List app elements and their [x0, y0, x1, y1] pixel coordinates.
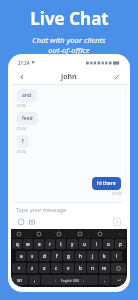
- button[interactable]: Keyboard tool: [35, 230, 42, 237]
- button[interactable]: Keyboard tool: [15, 230, 22, 237]
- staticText: e: [38, 241, 41, 247]
- button[interactable]: Keyboard tool: [55, 230, 62, 237]
- staticText: ,: [34, 277, 36, 283]
- button[interactable]: Attach photo: [27, 217, 36, 226]
- button[interactable]: r: [45, 239, 55, 249]
- button[interactable]: n: [87, 263, 98, 273]
- staticText: 21:24: [112, 191, 121, 196]
- button[interactable]: Emoji: [16, 217, 25, 226]
- button[interactable]: s: [27, 251, 38, 261]
- button[interactable]: e: [34, 239, 44, 249]
- staticText: y: [71, 241, 74, 247]
- staticText: s: [31, 253, 34, 259]
- button[interactable]: ,: [29, 275, 40, 285]
- staticText: and: [22, 92, 32, 99]
- button[interactable]: g: [63, 251, 74, 261]
- staticText: i: [96, 241, 98, 247]
- staticText: q: [16, 241, 19, 247]
- staticText: l: [116, 253, 118, 259]
- staticText: f: [56, 253, 58, 259]
- staticText: !#1: [17, 278, 23, 283]
- button[interactable]: !#1: [12, 275, 28, 285]
- button[interactable]: and: [17, 89, 37, 102]
- staticText: g: [67, 253, 70, 259]
- button[interactable]: l: [111, 251, 122, 261]
- staticText: j: [92, 253, 94, 259]
- staticText: h: [79, 253, 82, 259]
- button[interactable]: hi there: [92, 177, 121, 190]
- button[interactable]: Keyboard tool: [96, 230, 103, 237]
- staticText: o: [107, 241, 110, 247]
- button[interactable]: .: [99, 275, 110, 285]
- button[interactable]: x: [39, 263, 50, 273]
- button[interactable]: a: [16, 251, 26, 261]
- button[interactable]: ‹: [41, 275, 98, 285]
- button[interactable]: w: [23, 239, 33, 249]
- button[interactable]: t: [56, 239, 66, 249]
- button[interactable]: b: [75, 263, 86, 273]
- staticText: John: [61, 72, 77, 82]
- staticText: x: [43, 265, 46, 271]
- staticText: 21:24: [17, 149, 26, 154]
- button[interactable]: y: [67, 239, 78, 249]
- button[interactable]: Keyboard tool: [76, 230, 83, 237]
- staticText: k: [103, 253, 106, 259]
- button[interactable]: u: [79, 239, 90, 249]
- button[interactable]: c: [51, 263, 62, 273]
- button[interactable]: o: [103, 239, 114, 249]
- button[interactable]: i: [91, 239, 102, 249]
- button[interactable]: f: [17, 135, 29, 148]
- staticText: .: [104, 277, 106, 283]
- button[interactable]: feed: [17, 112, 38, 125]
- staticText: z: [31, 265, 34, 271]
- button[interactable]: z: [27, 263, 38, 273]
- staticText: b: [79, 265, 82, 271]
- staticText: Chat with your clients out-of-office: [32, 35, 106, 55]
- staticText: hi there: [97, 180, 116, 187]
- staticText: w: [26, 241, 30, 247]
- button[interactable]: More options: [116, 230, 123, 237]
- button[interactable]: f: [51, 251, 62, 261]
- staticText: d: [43, 253, 46, 259]
- button[interactable]: Type your message: [16, 206, 122, 213]
- button[interactable]: k: [99, 251, 110, 261]
- staticText: p: [119, 241, 122, 247]
- button[interactable]: m: [99, 263, 110, 273]
- button[interactable]: Key: [12, 263, 26, 273]
- button[interactable]: Back: [15, 70, 28, 83]
- staticText: t: [60, 241, 62, 247]
- button[interactable]: j: [87, 251, 98, 261]
- staticText: English (UK): [61, 279, 79, 283]
- button[interactable]: Key: [111, 263, 126, 273]
- button[interactable]: Key: [111, 275, 126, 285]
- staticText: n: [91, 265, 94, 271]
- staticText: r: [49, 241, 51, 247]
- staticText: c: [55, 265, 58, 271]
- staticText: Type your message: [16, 206, 66, 213]
- staticText: 21:24: [17, 126, 26, 131]
- button[interactable]: q: [12, 239, 22, 249]
- staticText: f: [22, 138, 24, 145]
- staticText: ›: [83, 278, 85, 283]
- staticText: v: [67, 265, 70, 271]
- staticText: ‹: [55, 278, 57, 283]
- staticText: 21:24: [17, 103, 26, 108]
- staticText: 21:24: [18, 60, 30, 66]
- button[interactable]: v: [63, 263, 74, 273]
- staticText: feed: [22, 115, 33, 122]
- staticText: u: [83, 241, 86, 247]
- staticText: m: [102, 265, 107, 271]
- staticText: Live Chat: [30, 7, 109, 30]
- button[interactable]: Send: [111, 216, 122, 227]
- staticText: a: [20, 253, 23, 259]
- button[interactable]: p: [115, 239, 126, 249]
- button[interactable]: Edit: [110, 70, 123, 83]
- button[interactable]: d: [39, 251, 50, 261]
- button[interactable]: h: [75, 251, 86, 261]
